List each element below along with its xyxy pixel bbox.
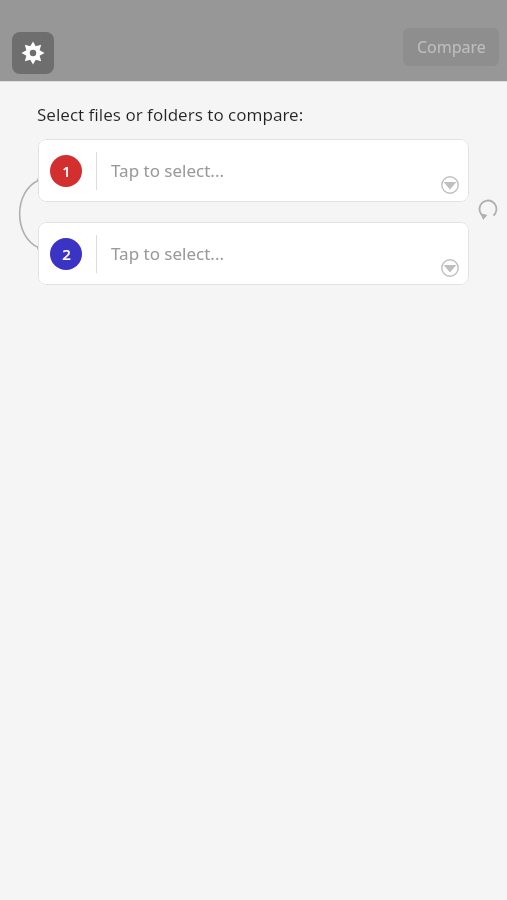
button[interactable]: 2 — [38, 222, 469, 285]
staticText: Select files or folders to compare: — [37, 103, 304, 126]
button[interactable]: Compare — [403, 28, 499, 66]
button[interactable]: 1 — [38, 139, 469, 202]
staticText: Tap to select... — [111, 242, 225, 265]
staticText: Compare — [417, 36, 486, 58]
staticText: Tap to select... — [111, 159, 225, 182]
button[interactable]: Settings — [12, 32, 54, 74]
button[interactable]: Show recent — [437, 255, 463, 281]
staticText: 2 — [62, 244, 71, 264]
button[interactable]: Show recent — [437, 172, 463, 198]
button[interactable]: Swap — [474, 195, 502, 223]
staticText: 1 — [62, 161, 71, 181]
